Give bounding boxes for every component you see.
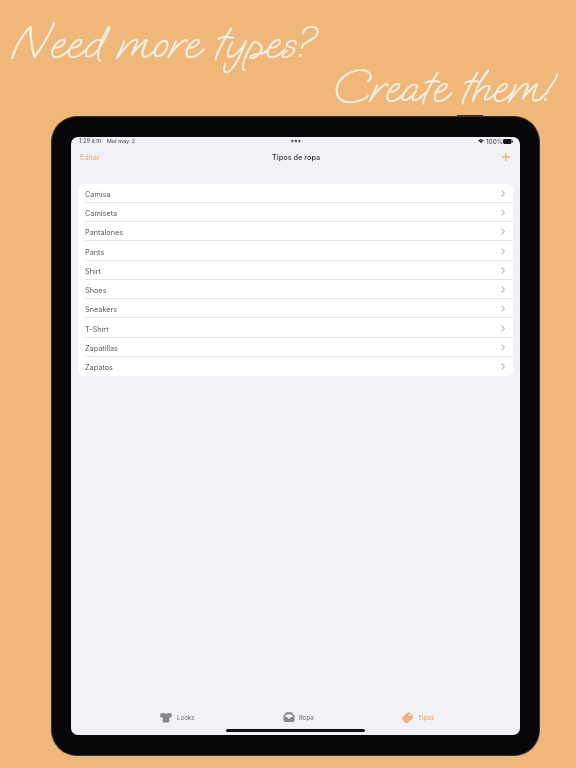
staticText: Need more types?	[11, 14, 314, 73]
button[interactable]: T-Shirt	[78, 319, 513, 338]
staticText: Pantalones	[85, 228, 124, 237]
button[interactable]: Camiseta	[78, 203, 513, 222]
staticText: Camisa	[85, 190, 111, 199]
button[interactable]: Add new type	[498, 149, 515, 166]
button[interactable]: Tipos	[397, 707, 433, 728]
button[interactable]: Zapatillas	[78, 338, 513, 357]
staticText: Mar may. 2	[107, 138, 135, 144]
button[interactable]: Ropa	[278, 707, 314, 728]
button[interactable]: Camisa	[78, 184, 513, 203]
staticText: Zapatos	[85, 363, 113, 372]
staticText: Pants	[85, 248, 105, 257]
button[interactable]: Editar	[73, 149, 106, 166]
staticText: Create them!	[332, 60, 553, 116]
staticText: Shirt	[85, 267, 102, 276]
staticText: Looks	[177, 714, 195, 721]
staticText: Ropa	[299, 714, 314, 721]
staticText: Editar	[80, 153, 100, 162]
staticText: Shoes	[85, 286, 107, 295]
button[interactable]: Shoes	[78, 280, 513, 299]
staticText: 1:29 a.m.	[79, 138, 104, 145]
staticText: 100%	[486, 138, 503, 146]
button[interactable]: Shirt	[78, 261, 513, 280]
button[interactable]: Pants	[78, 242, 513, 261]
staticText: Sneakers	[85, 305, 118, 314]
button[interactable]: Sneakers	[78, 299, 513, 318]
button[interactable]: Pantalones	[78, 222, 513, 241]
staticText: Zapatillas	[85, 344, 118, 353]
staticText: Tipos de ropa	[272, 153, 321, 162]
staticText: T-Shirt	[85, 325, 109, 334]
staticText: Tipos	[418, 714, 435, 721]
button[interactable]: Zapatos	[78, 357, 513, 376]
staticText: Camiseta	[85, 209, 118, 218]
button[interactable]: Looks	[155, 707, 195, 728]
